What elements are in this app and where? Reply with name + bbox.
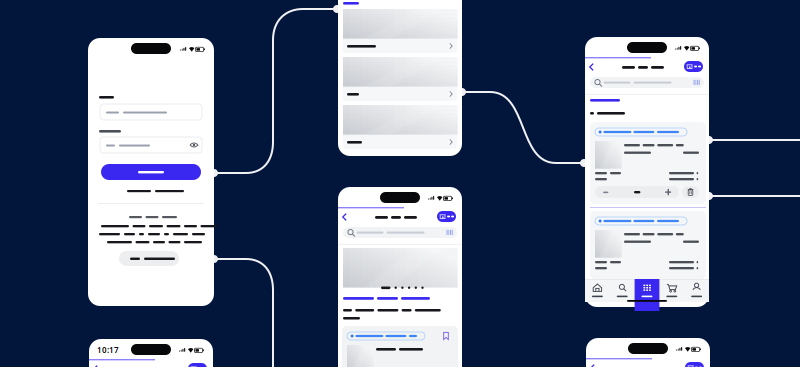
button[interactable]: Remove item xyxy=(0,0,800,367)
button[interactable] xyxy=(0,0,800,367)
button[interactable]: Decrease quantity xyxy=(0,0,800,367)
button[interactable]: Store options xyxy=(0,0,800,367)
button[interactable]: Store options xyxy=(0,0,800,367)
button[interactable]: Back xyxy=(0,0,800,367)
button[interactable]: Profile xyxy=(0,0,800,367)
button[interactable]: Back xyxy=(0,0,800,367)
button[interactable]: Store options xyxy=(0,0,800,367)
button[interactable]: Search xyxy=(0,0,800,367)
button[interactable] xyxy=(0,0,800,367)
button[interactable] xyxy=(0,0,800,367)
button[interactable]: Store options xyxy=(0,0,800,367)
button[interactable]: Cart xyxy=(0,0,800,367)
staticText: 10:17 xyxy=(97,344,119,355)
button[interactable] xyxy=(0,0,800,367)
button[interactable] xyxy=(0,0,800,367)
button[interactable]: Back xyxy=(0,0,800,367)
button[interactable]: Search xyxy=(0,0,800,367)
button[interactable]: Home xyxy=(0,0,800,367)
button[interactable] xyxy=(0,0,800,367)
button[interactable]: Increase quantity xyxy=(0,0,800,367)
button[interactable]: Search xyxy=(0,0,800,367)
button[interactable] xyxy=(0,0,800,367)
button[interactable]: Catalog xyxy=(0,0,800,367)
button[interactable]: Back xyxy=(0,0,800,367)
